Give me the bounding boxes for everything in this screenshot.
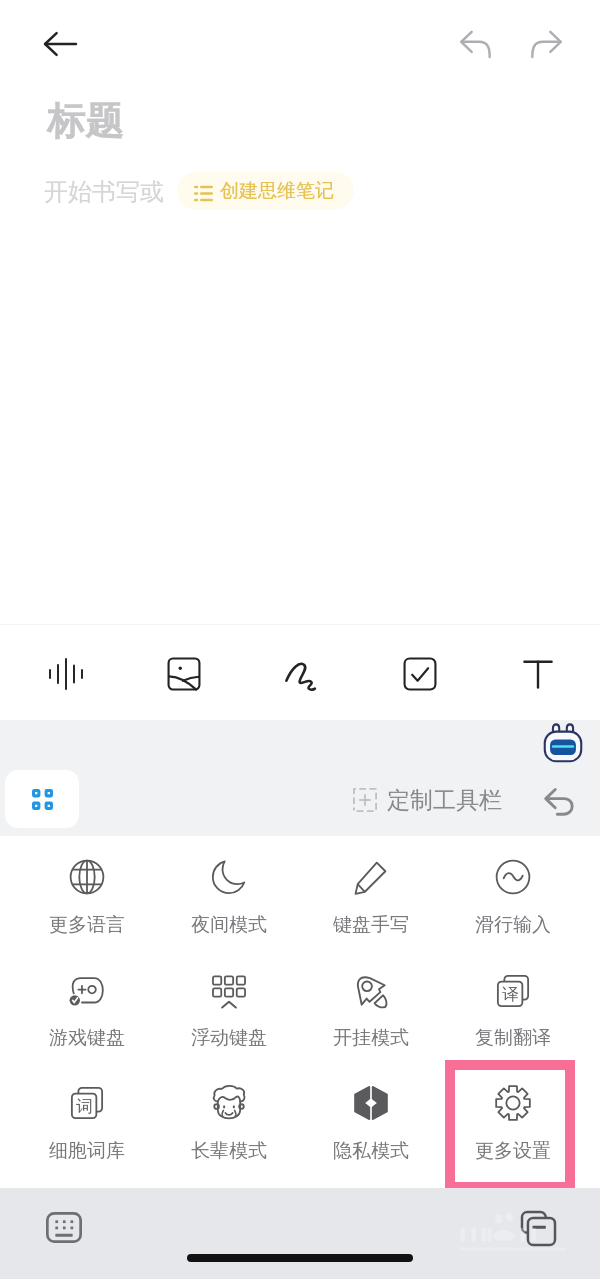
button[interactable]: Undo xyxy=(534,776,586,828)
staticText: 词 xyxy=(76,1096,93,1117)
button[interactable]: Text xyxy=(504,640,572,708)
button[interactable]: AI assistant xyxy=(543,722,583,762)
staticText: 创建思维笔记 xyxy=(220,179,334,203)
button[interactable] xyxy=(299,837,443,953)
staticText: 隐私模式 xyxy=(333,1139,409,1163)
staticText: 更多语言 xyxy=(49,913,125,937)
staticText: 开始书写或 xyxy=(44,177,164,207)
button[interactable] xyxy=(15,1071,159,1187)
staticText: 滑行输入 xyxy=(475,913,551,937)
button[interactable]: Toolbar xyxy=(5,770,79,828)
button[interactable]: 定制工具栏 xyxy=(345,778,510,822)
button[interactable] xyxy=(157,837,301,953)
button[interactable]: Back xyxy=(30,14,90,74)
button[interactable]: Keyboard xyxy=(36,1200,91,1255)
staticText: 更多设置 xyxy=(475,1139,551,1163)
button[interactable]: Checklist xyxy=(386,640,454,708)
button[interactable]: Clipboard xyxy=(508,1198,568,1258)
button[interactable] xyxy=(299,954,443,1070)
staticText: 浮动键盘 xyxy=(191,1026,267,1050)
button[interactable]: 创建思维笔记 xyxy=(177,172,354,210)
staticText: 开挂模式 xyxy=(333,1026,409,1050)
button[interactable] xyxy=(157,954,301,1070)
staticText: 夜间模式 xyxy=(191,913,267,937)
staticText: 译 xyxy=(502,984,519,1005)
staticText: 键盘手写 xyxy=(333,913,409,937)
button[interactable] xyxy=(15,837,159,953)
button[interactable] xyxy=(299,1071,443,1187)
staticText: 定制工具栏 xyxy=(387,786,502,815)
button[interactable] xyxy=(157,1071,301,1187)
button[interactable]: Image xyxy=(150,640,218,708)
staticText: 细胞词库 xyxy=(49,1139,125,1163)
staticText: 游戏键盘 xyxy=(49,1026,125,1050)
button[interactable]: Voice xyxy=(32,640,100,708)
button[interactable] xyxy=(441,1071,585,1187)
staticText: 长辈模式 xyxy=(191,1139,267,1163)
button[interactable] xyxy=(15,954,159,1070)
button[interactable]: Handwriting xyxy=(268,640,336,708)
button[interactable] xyxy=(441,954,585,1070)
staticText: 标题 xyxy=(47,97,123,145)
staticText: 复制翻译 xyxy=(475,1026,551,1050)
button[interactable]: Redo xyxy=(516,14,576,74)
button[interactable]: Undo xyxy=(446,14,506,74)
button[interactable] xyxy=(441,837,585,953)
